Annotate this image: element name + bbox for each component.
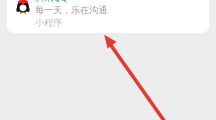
staticText: 每一天，乐在沟通 [35, 4, 107, 16]
button[interactable]: 腾讯QQ [7, 0, 209, 33]
staticText: 小程序 [35, 17, 62, 28]
staticText: 腾讯QQ [35, 0, 67, 3]
